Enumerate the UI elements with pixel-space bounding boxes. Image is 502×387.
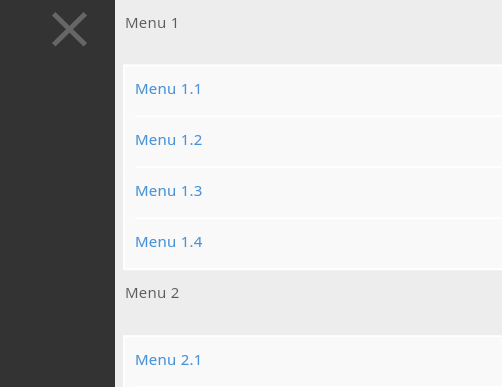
button[interactable]: Menu 1.3: [125, 168, 502, 217]
staticText: Menu 2: [125, 282, 180, 302]
button[interactable]: Close navigation drawer: [45, 5, 94, 54]
staticText: Menu 2.1: [135, 349, 203, 369]
button[interactable]: Menu 1.4: [125, 219, 502, 268]
staticText: Menu 1.1: [135, 78, 203, 98]
button[interactable]: Menu 1.1: [125, 66, 502, 115]
staticText: Menu 1.4: [135, 231, 203, 251]
staticText: Menu 1: [125, 12, 180, 32]
button[interactable]: Menu 1.2: [125, 117, 502, 166]
staticText: Menu 1.2: [135, 129, 203, 149]
button[interactable]: Menu 2.1: [125, 337, 502, 386]
staticText: Menu 1.3: [135, 180, 203, 200]
